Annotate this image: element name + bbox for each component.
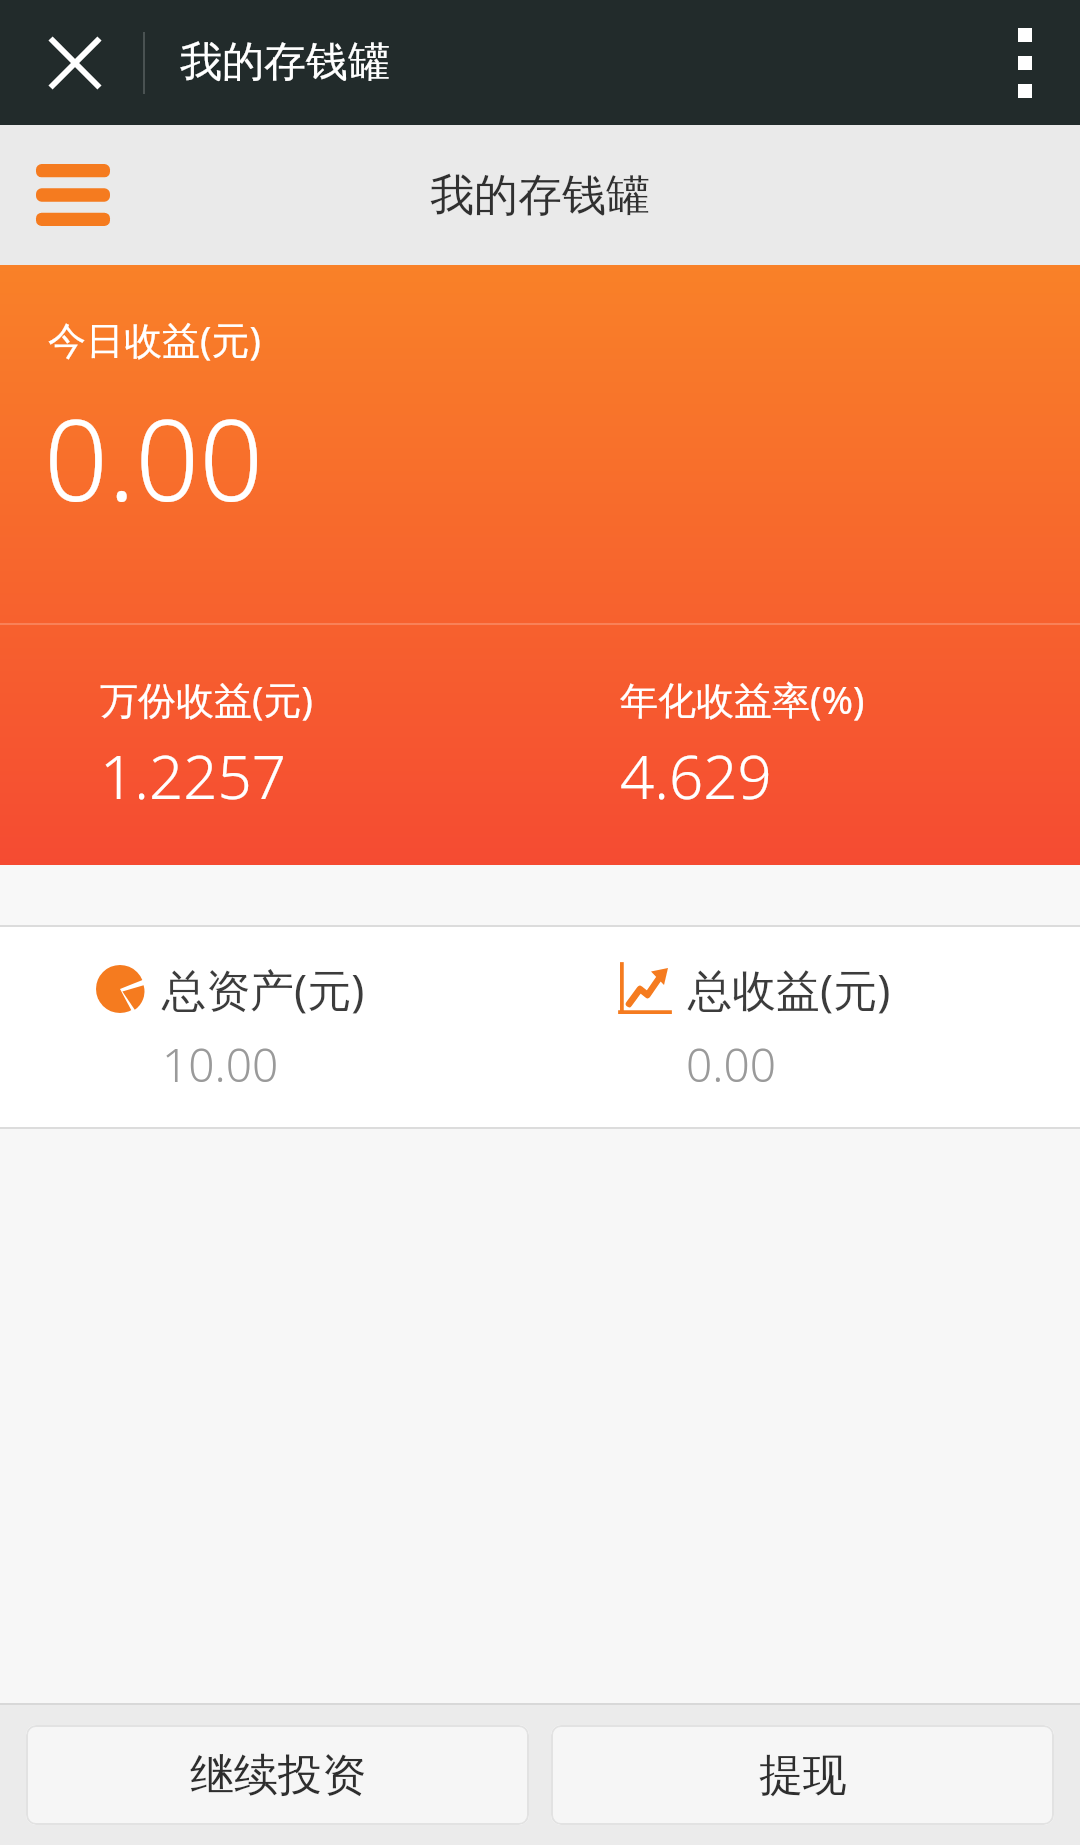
- button[interactable]: Menu: [18, 140, 128, 250]
- staticText: 继续投资: [190, 1748, 366, 1803]
- staticText: 万份收益(元): [100, 673, 313, 725]
- staticText: 我的存钱罐: [180, 36, 390, 89]
- staticText: 4.629: [620, 735, 772, 817]
- staticText: 总收益(元): [688, 959, 891, 1019]
- staticText: 0.00: [686, 1033, 777, 1096]
- button[interactable]: 继续投资: [26, 1725, 529, 1825]
- staticText: 总资产(元): [162, 959, 365, 1019]
- staticText: 我的存钱罐: [430, 168, 650, 223]
- staticText: 今日收益(元): [48, 313, 261, 365]
- staticText: 1.2257: [100, 735, 286, 817]
- staticText: 年化收益率(%): [620, 673, 865, 725]
- staticText: 提现: [759, 1748, 847, 1803]
- staticText: 10.00: [162, 1033, 279, 1096]
- button[interactable]: 提现: [551, 1725, 1054, 1825]
- staticText: 0.00: [44, 381, 264, 534]
- button[interactable]: 总资产(元): [0, 927, 540, 1127]
- button[interactable]: More options: [970, 0, 1080, 125]
- button[interactable]: Close: [20, 0, 130, 125]
- button[interactable]: 总收益(元): [540, 927, 1080, 1127]
